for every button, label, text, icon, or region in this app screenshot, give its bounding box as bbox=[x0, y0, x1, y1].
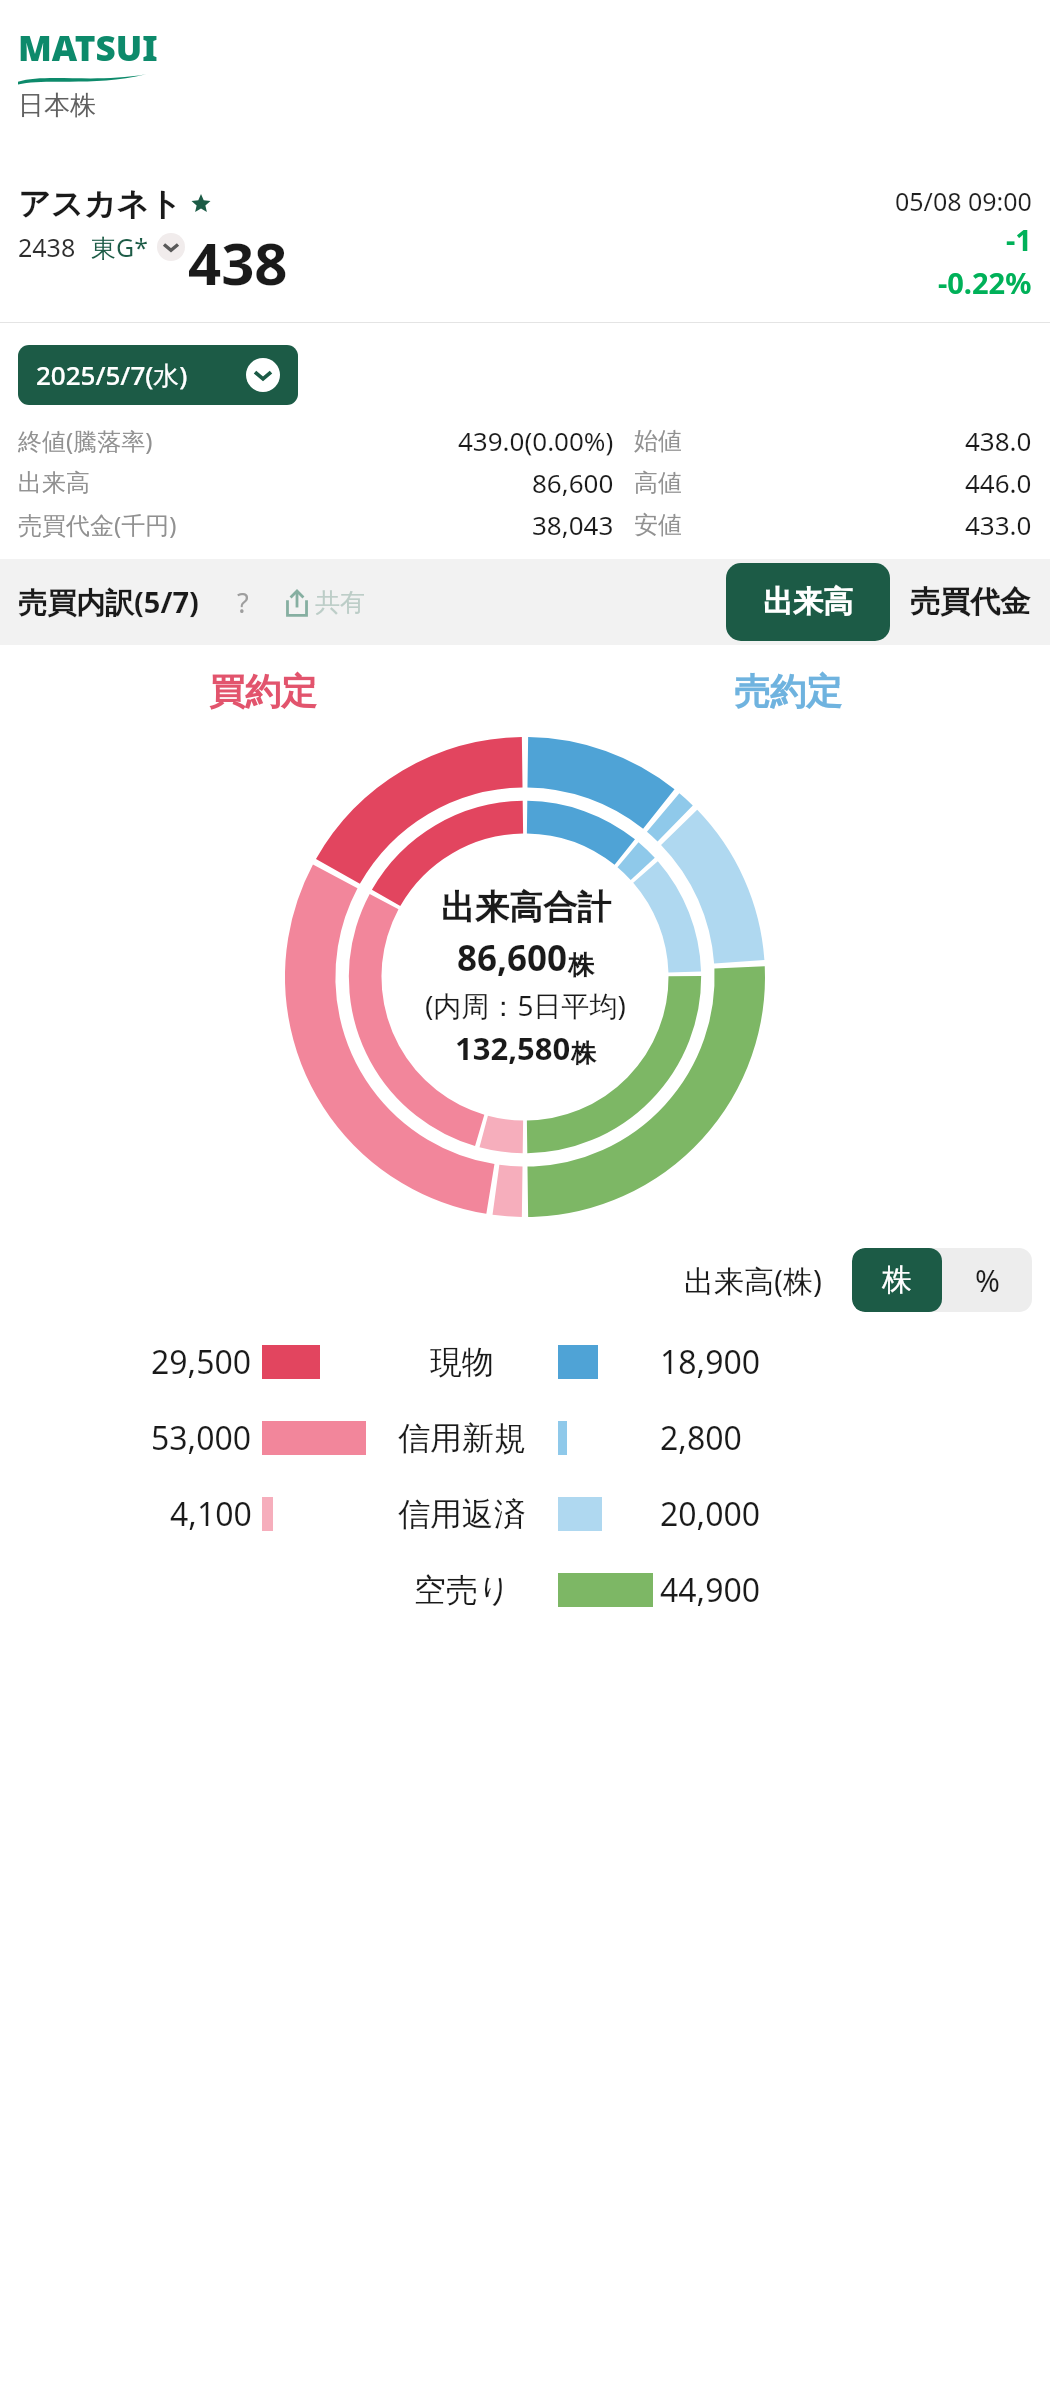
staticText: 4,100 bbox=[170, 1492, 252, 1536]
staticText: 売買代金(千円) bbox=[18, 508, 177, 541]
staticText: 株 bbox=[568, 949, 594, 982]
staticText: 共有 bbox=[315, 587, 365, 618]
staticText: -0.22% bbox=[938, 263, 1032, 302]
staticText: 86,600 bbox=[457, 934, 568, 982]
staticText: 18,900 bbox=[660, 1340, 761, 1384]
staticText: 株 bbox=[571, 1038, 596, 1069]
staticText: 出来高 bbox=[763, 583, 853, 621]
staticText: -1 bbox=[1006, 220, 1032, 259]
staticText: 売買内訳(5/7) bbox=[18, 582, 199, 622]
staticText: 433.0 bbox=[965, 507, 1032, 542]
staticText: 株 bbox=[882, 1261, 912, 1299]
staticText: 高値 bbox=[634, 468, 682, 498]
button[interactable]: % bbox=[942, 1248, 1032, 1312]
button[interactable]: 2025/5/7(水) bbox=[18, 345, 298, 405]
staticText: 売約定 bbox=[734, 669, 842, 714]
staticText: 446.0 bbox=[965, 465, 1032, 500]
staticText: 売買代金 bbox=[910, 583, 1030, 621]
staticText: 44,900 bbox=[660, 1568, 761, 1612]
staticText: 安値 bbox=[634, 510, 682, 540]
staticText: 現物 bbox=[430, 1342, 494, 1382]
button[interactable]: 出来高 bbox=[726, 563, 890, 641]
staticText: 86,600 bbox=[532, 465, 614, 500]
staticText: 空売り bbox=[414, 1570, 511, 1610]
staticText: アスカネト bbox=[18, 184, 182, 224]
staticText: (内周：5日平均) bbox=[425, 986, 626, 1024]
staticText: 終値(騰落率) bbox=[18, 424, 153, 457]
staticText: 439.0(0.00%) bbox=[458, 423, 614, 458]
staticText: 20,000 bbox=[660, 1492, 761, 1536]
staticText: ? bbox=[237, 584, 249, 620]
staticText: 始値 bbox=[634, 426, 682, 456]
staticText: 出来高 bbox=[18, 468, 90, 498]
staticText: 438.0 bbox=[965, 423, 1032, 458]
staticText: 05/08 09:00 bbox=[895, 184, 1032, 218]
staticText: 日本株 bbox=[18, 89, 96, 122]
staticText: 132,580 bbox=[455, 1027, 571, 1069]
button[interactable]: 売買代金 bbox=[890, 563, 1050, 641]
staticText: 出来高合計 bbox=[441, 886, 611, 929]
button[interactable]: Market selector bbox=[157, 233, 185, 261]
staticText: 信用返済 bbox=[398, 1494, 526, 1534]
staticText: 東G* bbox=[91, 230, 148, 264]
button[interactable]: 株 bbox=[852, 1248, 942, 1312]
staticText: % bbox=[975, 1260, 1000, 1301]
staticText: 438 bbox=[188, 223, 288, 302]
button[interactable]: Help bbox=[225, 584, 261, 620]
staticText: 2,800 bbox=[660, 1416, 742, 1460]
staticText: 信用新規 bbox=[398, 1418, 526, 1458]
staticText: 出来高(株) bbox=[684, 1260, 822, 1301]
button[interactable]: Share bbox=[283, 587, 365, 618]
staticText: 2438 bbox=[18, 230, 76, 264]
staticText: 2025/5/7(水) bbox=[36, 357, 188, 393]
staticText: 買約定 bbox=[209, 669, 317, 714]
staticText: 38,043 bbox=[532, 507, 614, 542]
staticText: 53,000 bbox=[151, 1416, 252, 1460]
staticText: MATSUI bbox=[18, 24, 158, 72]
staticText: 29,500 bbox=[151, 1340, 252, 1384]
